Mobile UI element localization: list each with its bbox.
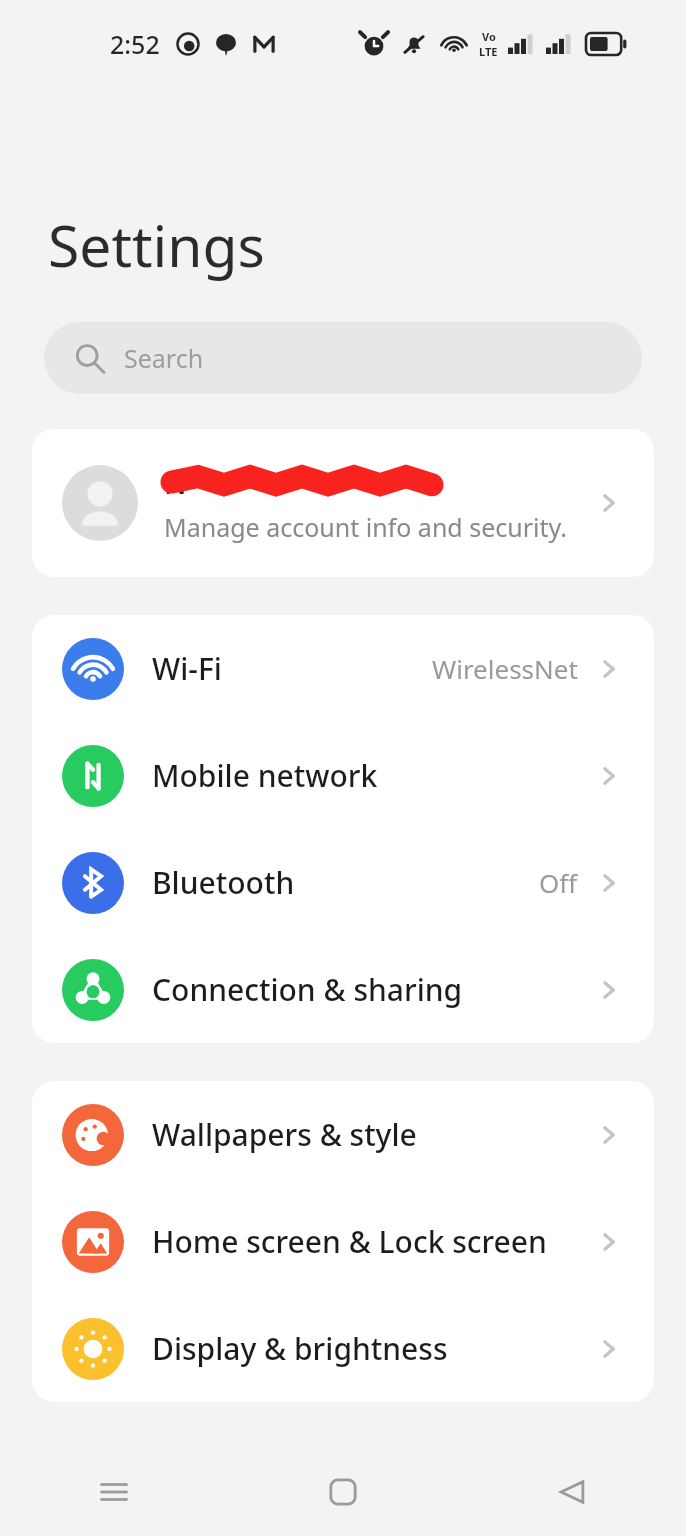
staticText: Wallpapers & style: [152, 1114, 417, 1155]
button[interactable]: Home screen & Lock screen: [32, 1188, 654, 1295]
staticText: Display & brightness: [152, 1328, 448, 1369]
staticText: Search: [124, 341, 204, 375]
button[interactable]: N: [32, 429, 654, 577]
staticText: LTE: [479, 44, 498, 59]
staticText: Manage account info and security.: [164, 510, 567, 544]
staticText: N: [164, 463, 187, 502]
button[interactable]: Connection & sharing: [32, 936, 654, 1043]
button[interactable]: Wallpapers & style: [32, 1081, 654, 1188]
staticText: Settings: [48, 206, 265, 284]
button[interactable]: Mobile network: [32, 722, 654, 829]
button[interactable]: Recents: [0, 1448, 228, 1536]
staticText: Bluetooth: [152, 862, 295, 903]
staticText: 2:52: [110, 27, 160, 61]
button[interactable]: Search: [44, 322, 642, 394]
button[interactable]: Back: [457, 1448, 686, 1536]
staticText: WirelessNet: [432, 651, 578, 686]
button[interactable]: Home: [228, 1448, 457, 1536]
staticText: Off: [539, 865, 578, 900]
staticText: Vo: [482, 29, 496, 44]
staticText: Home screen & Lock screen: [152, 1221, 547, 1262]
staticText: Wi-Fi: [152, 648, 222, 689]
staticText: Mobile network: [152, 755, 378, 796]
button[interactable]: Wi-Fi: [32, 615, 654, 722]
button[interactable]: Bluetooth: [32, 829, 654, 936]
button[interactable]: Display & brightness: [32, 1295, 654, 1402]
staticText: Connection & sharing: [152, 969, 463, 1010]
